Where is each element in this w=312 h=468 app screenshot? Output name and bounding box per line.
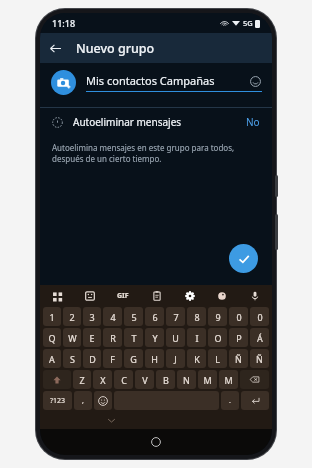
staticText: C (121, 374, 127, 386)
button[interactable]: . (221, 391, 239, 410)
button[interactable]: O (208, 328, 227, 347)
button[interactable]: 1 (43, 307, 61, 326)
button[interactable]: 2 (63, 307, 81, 326)
staticText: Autoeliminar mensajes (73, 115, 182, 129)
staticText: 11:18 (52, 17, 76, 29)
button[interactable]: M (198, 370, 217, 389)
button[interactable]: 0 (229, 307, 248, 326)
staticText: 7 (173, 311, 179, 323)
button[interactable]: Y (145, 328, 164, 347)
staticText: GIF (117, 291, 129, 301)
button[interactable]: Autoeliminar mensajes (40, 108, 272, 136)
button[interactable]: I (187, 328, 206, 347)
button[interactable]: G (124, 349, 143, 368)
button[interactable]: D (83, 349, 101, 368)
staticText: U (172, 332, 179, 344)
button[interactable]: 6 (145, 307, 164, 326)
button[interactable]: Emoji keyboard (94, 391, 112, 410)
staticText: E (89, 332, 95, 344)
button[interactable]: R (103, 328, 122, 347)
button[interactable]: Back (40, 33, 70, 63)
button[interactable]: W (63, 328, 81, 347)
staticText: N (183, 374, 190, 386)
staticText: K (194, 353, 200, 365)
staticText: G (130, 353, 137, 365)
button[interactable]: Enter (241, 391, 269, 410)
staticText: S (70, 353, 75, 365)
button[interactable]: Clipboard (148, 287, 166, 305)
staticText: I (195, 332, 199, 344)
staticText: M (224, 374, 233, 386)
staticText: Z (79, 374, 85, 386)
staticText: 2 (69, 311, 75, 323)
button[interactable]: P (229, 328, 248, 347)
staticText: 0 (236, 311, 242, 323)
button[interactable]: Á (250, 328, 269, 347)
staticText: B (163, 374, 169, 386)
staticText: H (151, 353, 158, 365)
staticText: , (82, 396, 84, 406)
button[interactable]: Home (146, 432, 166, 452)
button[interactable]: 5 (124, 307, 143, 326)
button[interactable]: 8 (187, 307, 206, 326)
button[interactable]: T (124, 328, 143, 347)
staticText: ?123 (50, 396, 66, 406)
staticText: V (142, 374, 148, 386)
button[interactable]: Ñ (229, 349, 248, 368)
staticText: T (131, 332, 137, 344)
button[interactable]: C (114, 370, 133, 389)
button[interactable]: J (166, 349, 185, 368)
button[interactable]: Emoji (248, 74, 262, 88)
staticText: Ñ (256, 353, 263, 365)
staticText: . (229, 396, 231, 406)
button[interactable]: X (93, 370, 112, 389)
button[interactable]: 3 (83, 307, 101, 326)
staticText: 8 (194, 311, 200, 323)
button[interactable]: K (187, 349, 206, 368)
button[interactable]: ?123 (43, 391, 72, 410)
button[interactable]: Create group (229, 244, 258, 273)
button[interactable]: E (83, 328, 101, 347)
staticText: Y (152, 332, 158, 344)
button[interactable]: Hide keyboard (101, 411, 121, 429)
button[interactable]: A (43, 349, 61, 368)
button[interactable]: V (135, 370, 154, 389)
button[interactable]: Apps (48, 287, 66, 305)
staticText: M (203, 374, 212, 386)
button[interactable]: Stickers (81, 287, 99, 305)
button[interactable]: Add group photo (51, 70, 76, 95)
button[interactable]: 4 (103, 307, 122, 326)
button[interactable]: Ñ (250, 349, 269, 368)
button[interactable]: M (219, 370, 238, 389)
button[interactable]: GIF (113, 288, 133, 304)
button[interactable]: F (103, 349, 122, 368)
button[interactable]: H (145, 349, 164, 368)
staticText: 4 (110, 311, 116, 323)
button[interactable]: , (74, 391, 92, 410)
staticText: A (49, 353, 55, 365)
button[interactable]: 0 (250, 307, 269, 326)
staticText: 3 (89, 311, 95, 323)
button[interactable]: Settings (181, 287, 199, 305)
button[interactable]: Backspace (240, 370, 269, 389)
button[interactable]: 7 (166, 307, 185, 326)
staticText: D (89, 353, 96, 365)
button[interactable]: S (63, 349, 81, 368)
button[interactable]: 9 (208, 307, 227, 326)
button[interactable]: Q (43, 328, 61, 347)
staticText: O (214, 332, 222, 344)
button[interactable]: B (156, 370, 175, 389)
button[interactable]: Shift (43, 370, 71, 389)
button[interactable]: Theme (213, 287, 231, 305)
staticText: Mis contactos Campañas (86, 73, 248, 88)
staticText: No (246, 115, 260, 129)
button[interactable]: L (208, 349, 227, 368)
button[interactable]: U (166, 328, 185, 347)
staticText: 0 (257, 311, 263, 323)
button[interactable]: Z (73, 370, 91, 389)
staticText: 6 (152, 311, 158, 323)
staticText: R (110, 332, 116, 344)
button[interactable]: N (177, 370, 196, 389)
button[interactable]: Voice input (246, 287, 264, 305)
